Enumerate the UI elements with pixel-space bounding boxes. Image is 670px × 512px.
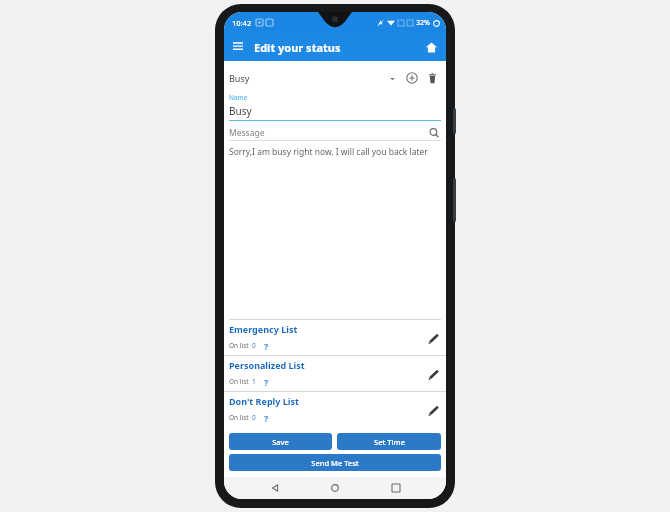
button[interactable]: Help	[261, 376, 271, 386]
button[interactable]: Edit Don't Reply List	[425, 402, 441, 418]
button[interactable]: Home	[421, 37, 441, 57]
button[interactable]: Sorry,I am busy right now, I will call y…	[229, 146, 441, 158]
button[interactable]: Home	[325, 478, 345, 498]
button[interactable]: Don't Reply List	[224, 392, 446, 427]
button[interactable]: Edit Emergency List	[425, 330, 441, 346]
button[interactable]: Set Time	[337, 433, 441, 450]
staticText: Edit your status	[254, 40, 341, 55]
staticText: Set Time	[374, 437, 405, 447]
button[interactable]: Back	[265, 478, 285, 498]
button[interactable]: Help	[261, 412, 271, 422]
staticText: Busy	[229, 72, 390, 84]
staticText: On list	[229, 377, 249, 386]
button[interactable]: Help	[261, 340, 271, 350]
button[interactable]: Menu	[228, 37, 248, 57]
staticText: ?	[264, 376, 269, 386]
staticText: Message	[229, 127, 427, 139]
staticText: On list	[229, 341, 249, 350]
button[interactable]: Personalized List	[224, 356, 446, 391]
button[interactable]: Recent apps	[386, 478, 406, 498]
staticText: Save	[272, 437, 289, 447]
staticText: Personalized List	[229, 359, 305, 371]
button[interactable]: Save	[229, 433, 332, 450]
button[interactable]: Busy	[229, 67, 397, 89]
staticText: 10:42	[232, 18, 252, 28]
button[interactable]: Busy	[229, 104, 441, 118]
staticText: ?	[264, 340, 269, 350]
staticText: Busy	[229, 104, 252, 118]
staticText: Don't Reply List	[229, 395, 299, 407]
staticText: 0	[252, 341, 256, 350]
staticText: 1	[252, 377, 256, 386]
button[interactable]: Emergency List	[224, 320, 446, 355]
button[interactable]: Add status	[403, 69, 421, 87]
staticText: 0	[252, 413, 256, 422]
button[interactable]: Delete status	[423, 69, 441, 87]
staticText: Send Me Test	[311, 458, 359, 468]
staticText: Name	[229, 93, 248, 102]
staticText: 32%	[416, 18, 430, 28]
staticText: On list	[229, 413, 249, 422]
staticText: ?	[264, 412, 269, 422]
button[interactable]: Send Me Test	[229, 454, 441, 471]
staticText: Emergency List	[229, 323, 298, 335]
staticText: Sorry,I am busy right now, I will call y…	[229, 146, 428, 158]
button[interactable]: Edit Personalized List	[425, 366, 441, 382]
button[interactable]: Search messages	[427, 126, 441, 140]
